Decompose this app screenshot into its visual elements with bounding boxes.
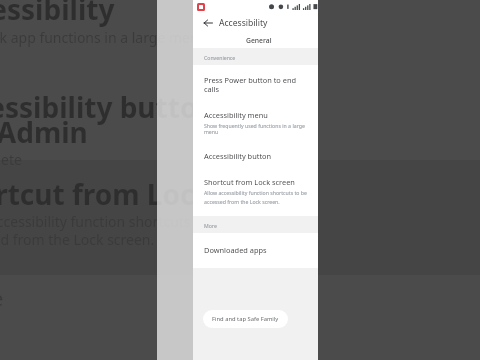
button[interactable]: General [200, 32, 318, 48]
staticText: vice Admin [0, 113, 88, 151]
staticText: Find and tap Safe Family [212, 315, 279, 323]
staticText: Shortcut from Lock screen [0, 175, 312, 213]
button[interactable]: Back [200, 15, 215, 30]
staticText: More [0, 285, 4, 312]
staticText: Allow accessibility function shortcuts t… [204, 189, 307, 196]
staticText: Accessibility [0, 0, 115, 28]
staticText: Convenience [204, 54, 236, 61]
button[interactable]: Downloaded apps [193, 237, 318, 263]
staticText: General [246, 36, 272, 45]
staticText: Accessibility button [204, 151, 272, 161]
staticText: an block app functions in a large menu [0, 28, 208, 47]
button[interactable]: Accessibility button [193, 143, 318, 169]
button[interactable]: Press Power button to end calls [193, 67, 318, 102]
button[interactable]: Find and tap Safe Family [203, 310, 288, 328]
staticText: can't delete [0, 150, 22, 169]
button[interactable]: Accessibility menu [193, 102, 318, 143]
staticText: Press Power button to end calls [204, 75, 310, 94]
staticText: Accessibility [219, 17, 268, 29]
staticText: accessed from the Lock screen. [0, 230, 155, 249]
staticText: More [204, 222, 217, 229]
staticText: accessed from the Lock screen. [204, 198, 280, 205]
staticText: Allow accessibility function shortcuts t… [0, 212, 228, 231]
staticText: Accessibility menu [204, 110, 268, 120]
staticText: Shortcut from Lock screen [204, 177, 295, 187]
button[interactable]: Shortcut from Lock screen [193, 169, 318, 213]
staticText: Show frequently used functions in a larg… [204, 122, 310, 135]
staticText: Downloaded apps [204, 245, 267, 255]
staticText: Accessibility button [0, 88, 216, 126]
